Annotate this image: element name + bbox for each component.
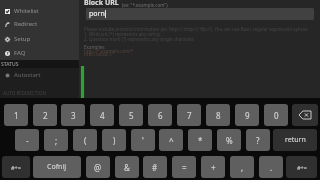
button[interactable]: 3 <box>61 104 85 126</box>
staticText: AUTO REDIRECTION <box>3 90 46 96</box>
staticText: 8 <box>216 110 221 121</box>
staticText: (ex: "*.example.com") <box>122 2 168 8</box>
staticText: . <box>270 162 273 173</box>
button[interactable]: 9 <box>235 104 259 126</box>
staticText: Block URL <box>84 0 119 8</box>
staticText: STATUS <box>1 61 19 68</box>
button[interactable]: #+= <box>2 156 30 178</box>
staticText: porn <box>89 9 105 19</box>
staticText: @ <box>94 162 102 173</box>
button[interactable]: & <box>115 156 139 178</box>
button[interactable]: ( <box>73 129 97 151</box>
button[interactable]: ) <box>102 129 126 151</box>
button[interactable]: 5 <box>119 104 143 126</box>
staticText: #+= <box>11 164 21 171</box>
staticText: Please include protocol information (ex:… <box>84 26 309 32</box>
button[interactable]: 2 <box>33 104 57 126</box>
staticText: #+= <box>297 164 307 171</box>
staticText: return <box>285 135 306 145</box>
button[interactable]: #+= <box>286 156 317 178</box>
staticText: 1. Wildcard (*) represents any string. <box>84 31 162 37</box>
button[interactable]: ; <box>44 129 68 151</box>
staticText: & <box>124 162 130 173</box>
staticText: FAQ <box>14 49 26 57</box>
staticText: ) <box>113 135 116 146</box>
button[interactable]: , <box>230 156 254 178</box>
staticText: # <box>152 162 158 173</box>
staticText: , <box>241 162 244 173</box>
staticText: ^ <box>169 135 174 146</box>
staticText: 5 <box>129 110 134 121</box>
button[interactable]: = <box>172 156 196 178</box>
button[interactable]: 7 <box>177 104 201 126</box>
staticText: 9 <box>245 110 250 121</box>
staticText: Whitelist <box>14 7 39 15</box>
button[interactable]: 1 <box>4 104 28 126</box>
staticText: ? <box>256 135 260 146</box>
button[interactable]: Setup <box>0 32 79 46</box>
button[interactable]: % <box>217 129 241 151</box>
button[interactable]: ' <box>131 129 155 151</box>
button[interactable]: FAQ <box>0 46 79 60</box>
button[interactable]: 0 <box>264 104 288 126</box>
button[interactable]: porn <box>86 8 314 20</box>
button[interactable]: Autostart <box>0 68 79 82</box>
button[interactable]: ^ <box>159 129 183 151</box>
button[interactable]: * <box>188 129 212 151</box>
button[interactable]: Cofnij <box>33 156 81 178</box>
staticText: Cofnij <box>47 162 67 172</box>
staticText: + <box>211 162 216 173</box>
button[interactable]: @ <box>86 156 110 178</box>
staticText: Setup <box>14 35 31 43</box>
staticText: http://abcd.?? <box>84 51 113 57</box>
button[interactable]: # <box>143 156 167 178</box>
button[interactable]: 8 <box>206 104 230 126</box>
staticText: 3 <box>71 110 76 121</box>
button[interactable]: ? <box>246 129 270 151</box>
staticText: 6 <box>158 110 163 121</box>
button[interactable]: - <box>15 129 39 151</box>
staticText: 2. Question mark (?) represents any sing… <box>84 36 195 42</box>
staticText: - <box>26 135 29 146</box>
staticText: ( <box>84 135 87 146</box>
staticText: Autostart <box>14 71 41 79</box>
staticText: ; <box>55 135 58 146</box>
staticText: Examples: <box>84 44 106 50</box>
staticText: % <box>226 135 233 146</box>
button[interactable]: Whitelist <box>0 4 79 18</box>
staticText: * <box>198 135 203 146</box>
button[interactable]: . <box>259 156 283 178</box>
staticText: http://*.example.com/* <box>84 48 134 54</box>
button[interactable]: 6 <box>148 104 172 126</box>
staticText: = <box>182 162 187 173</box>
staticText: 0 <box>274 110 279 121</box>
button[interactable]: + <box>201 156 225 178</box>
staticText: 2 <box>43 110 48 121</box>
button[interactable]: return <box>273 129 317 151</box>
staticText: 7 <box>187 110 192 121</box>
button[interactable]: 4 <box>90 104 114 126</box>
staticText: 4 <box>100 110 105 121</box>
button[interactable]: Backspace <box>292 104 318 126</box>
button[interactable]: Redirect <box>0 17 79 31</box>
staticText: 1 <box>14 110 19 121</box>
staticText: Redirect <box>14 20 38 28</box>
staticText: ' <box>142 135 144 146</box>
